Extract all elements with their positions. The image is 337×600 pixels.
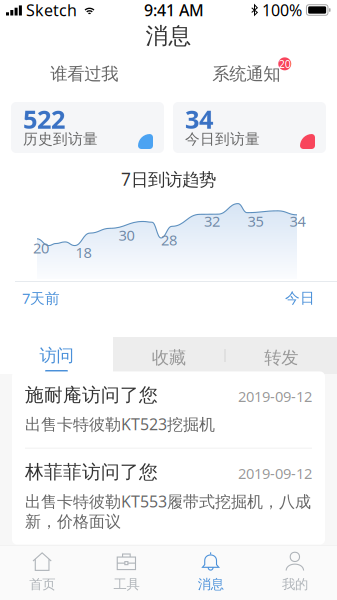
staticText: 32	[204, 211, 220, 231]
staticText: 今日	[285, 289, 315, 307]
button[interactable]: 施耐庵访问了您	[12, 371, 325, 448]
staticText: 施耐庵访问了您	[25, 383, 158, 406]
staticText: 28	[161, 230, 177, 249]
staticText: 今日到访量	[185, 130, 260, 148]
button[interactable]: 谁看过我	[0, 63, 168, 85]
button[interactable]: 收藏	[113, 337, 224, 374]
staticText: 35	[247, 211, 263, 231]
button[interactable]: 转发	[225, 337, 337, 374]
staticText: 9:41 AM	[144, 0, 204, 21]
staticText: 2019-09-12	[238, 464, 312, 483]
staticText: 18	[75, 243, 91, 262]
staticText: 谁看过我	[50, 63, 118, 85]
staticText: 历史到访量	[23, 130, 98, 148]
staticText: 522	[23, 102, 65, 136]
staticText: 我的	[282, 576, 308, 592]
button[interactable]: 我的	[253, 542, 337, 600]
staticText: 30	[119, 225, 135, 245]
staticText: 7日到访趋势	[121, 167, 216, 190]
staticText: 出售卡特彼勒KT523挖掘机	[25, 413, 215, 435]
button[interactable]: 访问	[0, 337, 113, 374]
staticText: 34	[185, 102, 213, 136]
button[interactable]: 工具	[84, 542, 168, 600]
button[interactable]: 522	[11, 102, 164, 153]
button[interactable]: 34	[173, 102, 326, 153]
staticText: 林菲菲访问了您	[25, 461, 158, 484]
staticText: 出售卡特彼勒KT553履带式挖掘机，八成新，价格面议	[25, 491, 311, 531]
staticText: 访问	[39, 345, 73, 366]
staticText: 首页	[29, 576, 55, 592]
staticText: 7天前	[22, 288, 60, 308]
staticText: 工具	[113, 576, 139, 592]
staticText: 20	[279, 57, 291, 71]
staticText: 消息	[145, 22, 191, 50]
staticText: 20	[33, 238, 49, 258]
button[interactable]: 消息	[108, 24, 228, 48]
staticText: 转发	[264, 347, 298, 368]
staticText: 2019-09-12	[238, 386, 312, 406]
button[interactable]: 系统通知	[168, 63, 337, 85]
button[interactable]: 林菲菲访问了您	[12, 449, 325, 544]
button[interactable]: 消息	[168, 542, 253, 600]
staticText: 34	[290, 211, 306, 231]
button[interactable]: 首页	[0, 542, 84, 600]
staticText: 100%	[262, 0, 302, 21]
staticText: 消息	[198, 576, 224, 592]
staticText: Sketch	[26, 0, 77, 21]
staticText: 系统通知	[212, 63, 280, 85]
staticText: 收藏	[152, 347, 186, 368]
